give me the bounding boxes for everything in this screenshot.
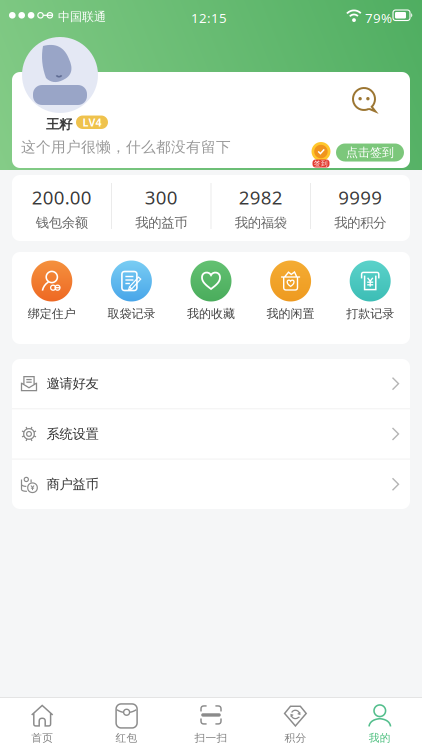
button[interactable]: 积分 <box>253 697 338 750</box>
staticText: 9999 <box>338 185 382 210</box>
staticText: 我的益币 <box>135 215 187 231</box>
staticText: 取袋记录 <box>107 306 155 321</box>
button[interactable]: 打款记录 <box>330 252 410 344</box>
staticText: 79% <box>365 9 392 27</box>
staticText: 我的福袋 <box>235 215 287 231</box>
staticText: 打款记录 <box>346 306 394 321</box>
button[interactable]: 200.00 <box>12 175 111 241</box>
staticText: 200.00 <box>32 185 92 210</box>
staticText: 系统设置 <box>46 426 98 442</box>
button[interactable]: 联系客服 <box>349 86 379 116</box>
button[interactable]: 9999 <box>310 175 410 241</box>
button[interactable]: 绑定住户 <box>12 252 92 344</box>
staticText: 钱包余额 <box>36 215 88 231</box>
button[interactable]: 邀请好友 <box>12 359 410 408</box>
button[interactable]: 我的收藏 <box>171 252 251 344</box>
button[interactable]: 取袋记录 <box>92 252 171 344</box>
staticText: 首页 <box>31 731 53 744</box>
button[interactable]: 商户益币 <box>12 460 410 509</box>
staticText: 红包 <box>116 731 138 744</box>
button[interactable]: 2982 <box>211 175 310 241</box>
staticText: 绑定住户 <box>28 306 76 321</box>
staticText: 我的收藏 <box>187 306 235 321</box>
staticText: 12:15 <box>191 9 227 27</box>
staticText: 积分 <box>284 731 306 744</box>
staticText: 扫一扫 <box>194 731 227 744</box>
staticText: 我的积分 <box>334 215 386 231</box>
button[interactable]: 首页 <box>0 697 84 750</box>
staticText: LV4 <box>82 115 101 129</box>
button[interactable]: 点击签到 <box>336 143 404 161</box>
button[interactable]: 我的 <box>338 697 422 750</box>
staticText: 2982 <box>239 185 283 210</box>
staticText: 商户益币 <box>46 476 98 492</box>
button[interactable]: 扫一扫 <box>169 697 253 750</box>
staticText: 签到 <box>314 159 328 168</box>
staticText: 王籽 <box>46 116 72 132</box>
staticText: 邀请好友 <box>46 375 98 392</box>
staticText: 这个用户很懒，什么都没有留下 <box>21 138 231 156</box>
button[interactable]: 300 <box>111 175 211 241</box>
button[interactable]: 我的闲置 <box>251 252 330 344</box>
staticText: 我的闲置 <box>267 306 315 321</box>
staticText: 点击签到 <box>346 145 394 160</box>
button[interactable]: 系统设置 <box>12 409 410 459</box>
button[interactable]: 红包 <box>84 697 169 750</box>
staticText: 我的 <box>369 731 391 744</box>
staticText: 中国联通 <box>58 9 106 24</box>
staticText: 300 <box>145 185 178 210</box>
